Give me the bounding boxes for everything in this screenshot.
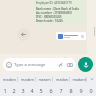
button[interactable]: Record voice message bbox=[78, 57, 93, 72]
staticText: Employee ID: 44903845779 bbox=[36, 1, 72, 5]
button[interactable] bbox=[56, 32, 86, 40]
staticText: Bank name : Qbee Bank of India bbox=[36, 7, 79, 11]
staticText: madam bbox=[21, 77, 34, 82]
button[interactable]: 8 bbox=[66, 84, 76, 96]
button[interactable]: 3 bbox=[18, 84, 27, 96]
staticText: 9 bbox=[79, 87, 83, 94]
button[interactable]: 0 bbox=[86, 84, 96, 96]
staticText: Branch code : 10246 bbox=[36, 19, 63, 23]
button[interactable]: Attach bbox=[58, 62, 64, 68]
staticText: 8 bbox=[69, 87, 73, 94]
button[interactable]: madam bbox=[0, 74, 18, 84]
button[interactable]: madam bbox=[18, 74, 36, 84]
button[interactable]: 2 bbox=[9, 84, 18, 96]
button[interactable]: 4 bbox=[27, 84, 36, 96]
button[interactable]: Emoji bbox=[3, 58, 76, 71]
staticText: 1 bbox=[3, 87, 7, 94]
button[interactable]: madard bbox=[70, 74, 87, 84]
staticText: 2 bbox=[12, 87, 16, 94]
staticText: 4 bbox=[30, 87, 34, 94]
button[interactable]: 9 bbox=[76, 84, 86, 96]
button[interactable]: 5 bbox=[36, 84, 46, 96]
button[interactable]: Reply bbox=[17, 28, 30, 41]
staticText: 5 bbox=[39, 87, 43, 94]
staticText: madan bbox=[56, 77, 68, 82]
staticText: IFSC : SBIN0003265 bbox=[36, 15, 62, 19]
staticText: 3 bbox=[21, 87, 25, 94]
staticText: 7 bbox=[59, 87, 63, 94]
staticText: 6 bbox=[49, 87, 53, 94]
staticText: madam bbox=[3, 77, 16, 82]
staticText: Acc number : 31089836850 bbox=[36, 11, 72, 15]
button[interactable]: Camera bbox=[67, 62, 73, 68]
button[interactable]: Employee ID: 44903845779 bbox=[33, 0, 86, 25]
staticText: maram bbox=[38, 77, 51, 82]
button[interactable]: More suggestions bbox=[87, 74, 96, 84]
button[interactable]: maram bbox=[36, 74, 53, 84]
staticText: madard bbox=[72, 77, 86, 82]
button[interactable]: 7 bbox=[56, 84, 66, 96]
button[interactable]: madan bbox=[53, 74, 70, 84]
staticText: Type a message bbox=[14, 62, 58, 68]
button[interactable]: 6 bbox=[46, 84, 56, 96]
button[interactable]: Emoji bbox=[6, 62, 12, 68]
staticText: 0 bbox=[89, 87, 93, 94]
button[interactable]: 1 bbox=[0, 84, 9, 96]
